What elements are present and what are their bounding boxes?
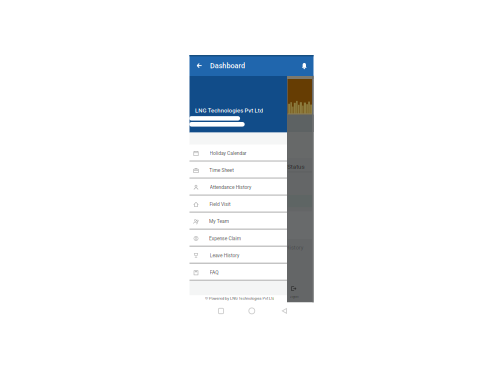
- staticText: Time Sheet: [88, 139, 355, 202]
- staticText: Expense Claim: [50, 207, 399, 270]
- button[interactable]: Home: [246, 305, 257, 316]
- staticText: My Team: [110, 190, 327, 253]
- staticText: Logout: [212, 265, 377, 328]
- staticText: Status: [220, 135, 372, 198]
- staticText: Dashboard: [98, 35, 356, 97]
- staticText: © Powered by LNG Technologies Pvt Ltd: [0, 267, 500, 330]
- staticText: Holiday Calendar: [27, 122, 429, 185]
- button[interactable]: [189, 196, 287, 213]
- staticText: Leave History: [63, 224, 385, 287]
- button[interactable]: [189, 213, 287, 230]
- button[interactable]: Back: [279, 306, 289, 316]
- staticText: Field Visit: [104, 173, 335, 236]
- button[interactable]: Recents: [216, 306, 226, 316]
- staticText: FAQ: [166, 241, 263, 304]
- staticText: LNG Technologies Pvt Ltd: [0, 79, 500, 142]
- button[interactable]: [189, 145, 287, 162]
- button[interactable]: [189, 179, 287, 196]
- button[interactable]: [189, 264, 287, 281]
- button[interactable]: Back: [194, 60, 205, 71]
- staticText: Attendance History: [4, 156, 456, 219]
- button[interactable]: [189, 247, 287, 264]
- button[interactable]: Notifications: [299, 60, 309, 72]
- staticText: History: [209, 216, 379, 279]
- button[interactable]: [189, 230, 287, 247]
- button[interactable]: [189, 162, 287, 179]
